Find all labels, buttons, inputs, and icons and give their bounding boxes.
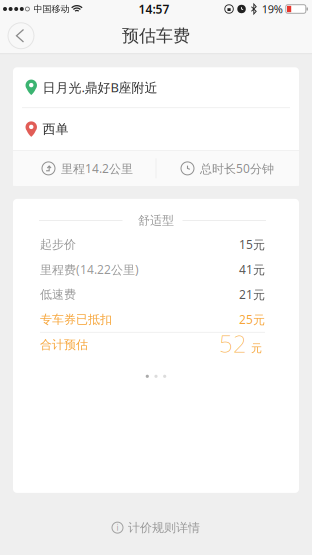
staticText: 预估车费 xyxy=(122,25,190,46)
staticText: 元 xyxy=(251,342,262,355)
staticText: 里程14.2公里 xyxy=(61,160,133,176)
staticText: 19% xyxy=(262,2,283,16)
staticText: 舒适型 xyxy=(138,213,174,228)
staticText: 中国移动 xyxy=(33,3,69,15)
staticText: 里程费(14.22公里) xyxy=(40,261,139,277)
staticText: 41元 xyxy=(239,261,265,277)
staticText: 21元 xyxy=(239,286,265,302)
staticText: 西单 xyxy=(42,121,68,137)
staticText: 25元 xyxy=(239,311,265,327)
staticText: 日月光.鼎好B座附近 xyxy=(42,79,157,96)
staticText: i xyxy=(116,522,118,533)
staticText: 14:57 xyxy=(138,1,169,17)
staticText: 合计预估 xyxy=(40,337,88,352)
button[interactable]: Back xyxy=(8,23,34,49)
staticText: 起步价 xyxy=(40,237,76,252)
staticText: 计价规则详情 xyxy=(128,520,200,535)
staticText: 15元 xyxy=(239,236,265,252)
button[interactable]: i xyxy=(112,520,200,535)
staticText: 专车券已抵扣 xyxy=(40,312,112,327)
staticText: 总时长50分钟 xyxy=(200,160,274,176)
staticText: 52 xyxy=(219,327,247,359)
staticText: 低速费 xyxy=(40,287,76,302)
